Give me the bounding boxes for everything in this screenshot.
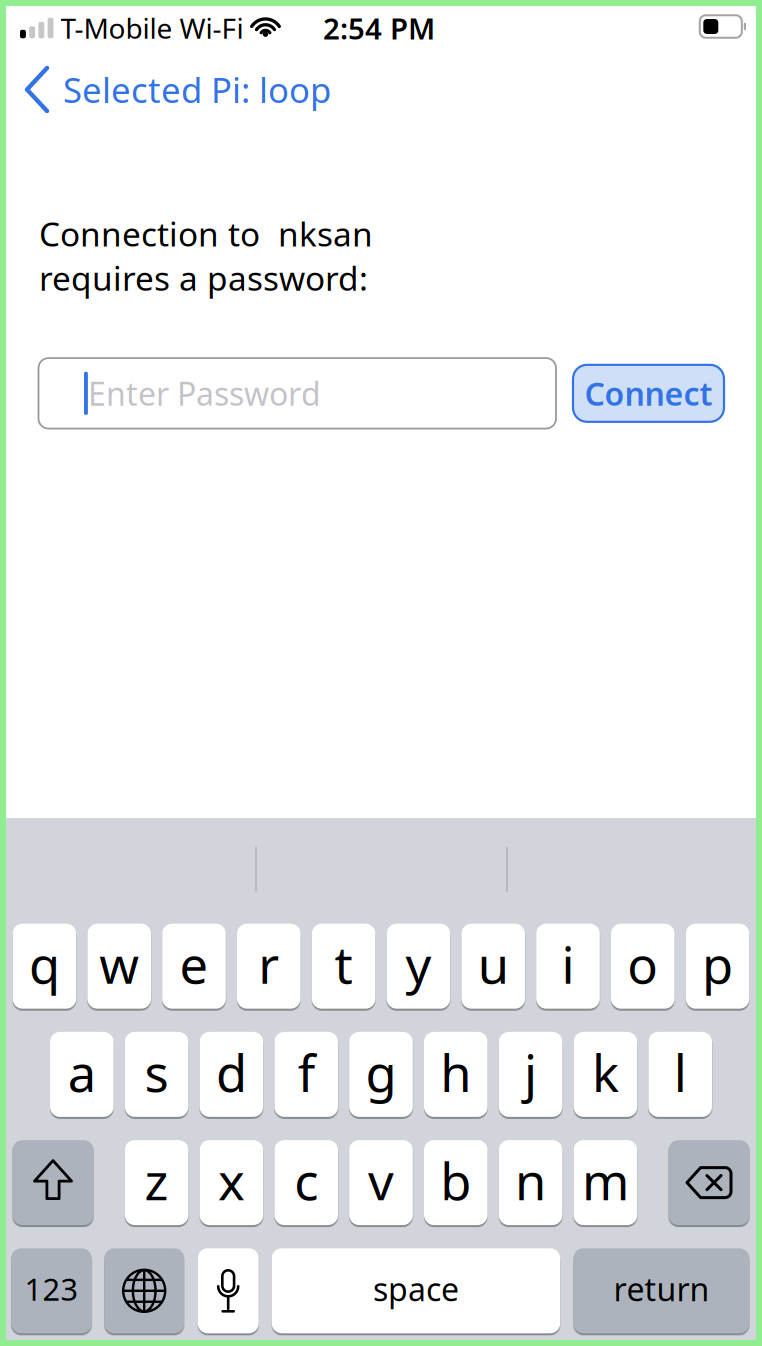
button[interactable]: Back [27,66,331,112]
button[interactable]: w [87,924,151,1009]
staticText: z [145,1147,169,1214]
button[interactable]: m [574,1140,637,1225]
button[interactable]: j [499,1032,562,1117]
button[interactable]: u [461,924,525,1009]
staticText: q [29,931,60,998]
staticText: r [258,931,279,998]
staticText: 2:54 PM [323,8,435,47]
staticText: s [145,1039,169,1106]
staticText: k [592,1039,619,1106]
staticText: n [515,1147,546,1214]
button[interactable]: Connect [573,365,724,422]
staticText: g [365,1039,396,1106]
button[interactable]: g [349,1032,413,1117]
button[interactable]: h [424,1032,488,1117]
button[interactable]: return [573,1248,749,1333]
staticText: y [405,931,431,998]
button[interactable]: space [272,1248,560,1333]
button[interactable]: p [686,924,749,1009]
staticText: space [373,1268,459,1310]
button[interactable]: b [424,1140,488,1225]
staticText: u [478,931,509,998]
button[interactable]: Enter Password [38,358,556,429]
staticText: v [368,1147,394,1214]
button[interactable]: Dictate [198,1248,259,1333]
button[interactable]: o [611,924,675,1009]
button[interactable]: v [349,1140,413,1225]
button[interactable]: Delete [668,1140,749,1225]
button[interactable]: y [387,924,450,1009]
staticText: t [335,931,353,998]
staticText: j [524,1039,537,1106]
button[interactable]: i [536,924,600,1009]
staticText: return [613,1268,709,1310]
button[interactable]: Next keyboard [104,1248,184,1333]
button[interactable]: r [237,924,301,1009]
staticText: Connection to nksan requires a password: [39,211,373,300]
button[interactable]: s [125,1032,188,1117]
staticText: 123 [24,1268,78,1309]
staticText: m [582,1147,629,1214]
staticText: l [674,1039,687,1106]
button[interactable]: q [13,924,76,1009]
staticText: x [218,1147,245,1214]
staticText: d [216,1039,247,1106]
staticText: T-Mobile Wi-Fi [60,9,243,47]
staticText: e [179,931,208,998]
button[interactable]: Shift [12,1140,93,1225]
staticText: b [440,1147,471,1214]
button[interactable]: z [125,1140,188,1225]
staticText: a [68,1039,96,1106]
button[interactable]: d [200,1032,263,1117]
button[interactable]: k [574,1032,637,1117]
staticText: i [561,931,574,998]
staticText: Enter Password [88,372,321,415]
button[interactable]: f [274,1032,338,1117]
staticText: c [294,1147,318,1214]
staticText: Selected Pi: loop [63,66,331,112]
staticText: w [99,931,139,998]
button[interactable]: t [312,924,375,1009]
staticText: f [298,1039,315,1106]
button[interactable]: n [499,1140,562,1225]
button[interactable]: e [162,924,226,1009]
button[interactable]: c [274,1140,338,1225]
staticText: Connect [584,372,712,415]
staticText: h [440,1039,471,1106]
button[interactable]: 123 [11,1248,92,1333]
button[interactable]: l [648,1032,712,1117]
staticText: p [702,931,733,998]
staticText: o [627,931,658,998]
button[interactable]: x [200,1140,263,1225]
button[interactable]: a [50,1032,114,1117]
